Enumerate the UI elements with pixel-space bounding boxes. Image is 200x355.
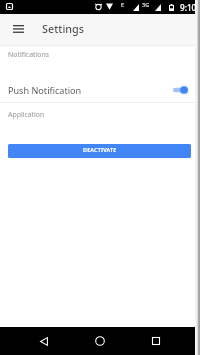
staticText: Application	[8, 110, 45, 119]
button[interactable]: Push Notification toggle, on	[173, 85, 188, 95]
staticText: E	[121, 1, 125, 8]
staticText: DEACTIVATE	[83, 146, 117, 153]
button[interactable]: Recent apps	[142, 327, 170, 355]
button[interactable]: Back	[30, 327, 58, 355]
staticText: Push Notification	[8, 84, 82, 96]
button[interactable]: Push Notification	[0, 78, 200, 102]
staticText: 9:10	[180, 2, 197, 13]
button[interactable]: Home	[86, 327, 114, 355]
staticText: Settings	[42, 21, 85, 36]
staticText: 3G	[142, 1, 150, 8]
button[interactable]: Open navigation menu	[0, 14, 36, 45]
button[interactable]: DEACTIVATE	[8, 144, 191, 158]
staticText: Notifications	[8, 50, 49, 59]
